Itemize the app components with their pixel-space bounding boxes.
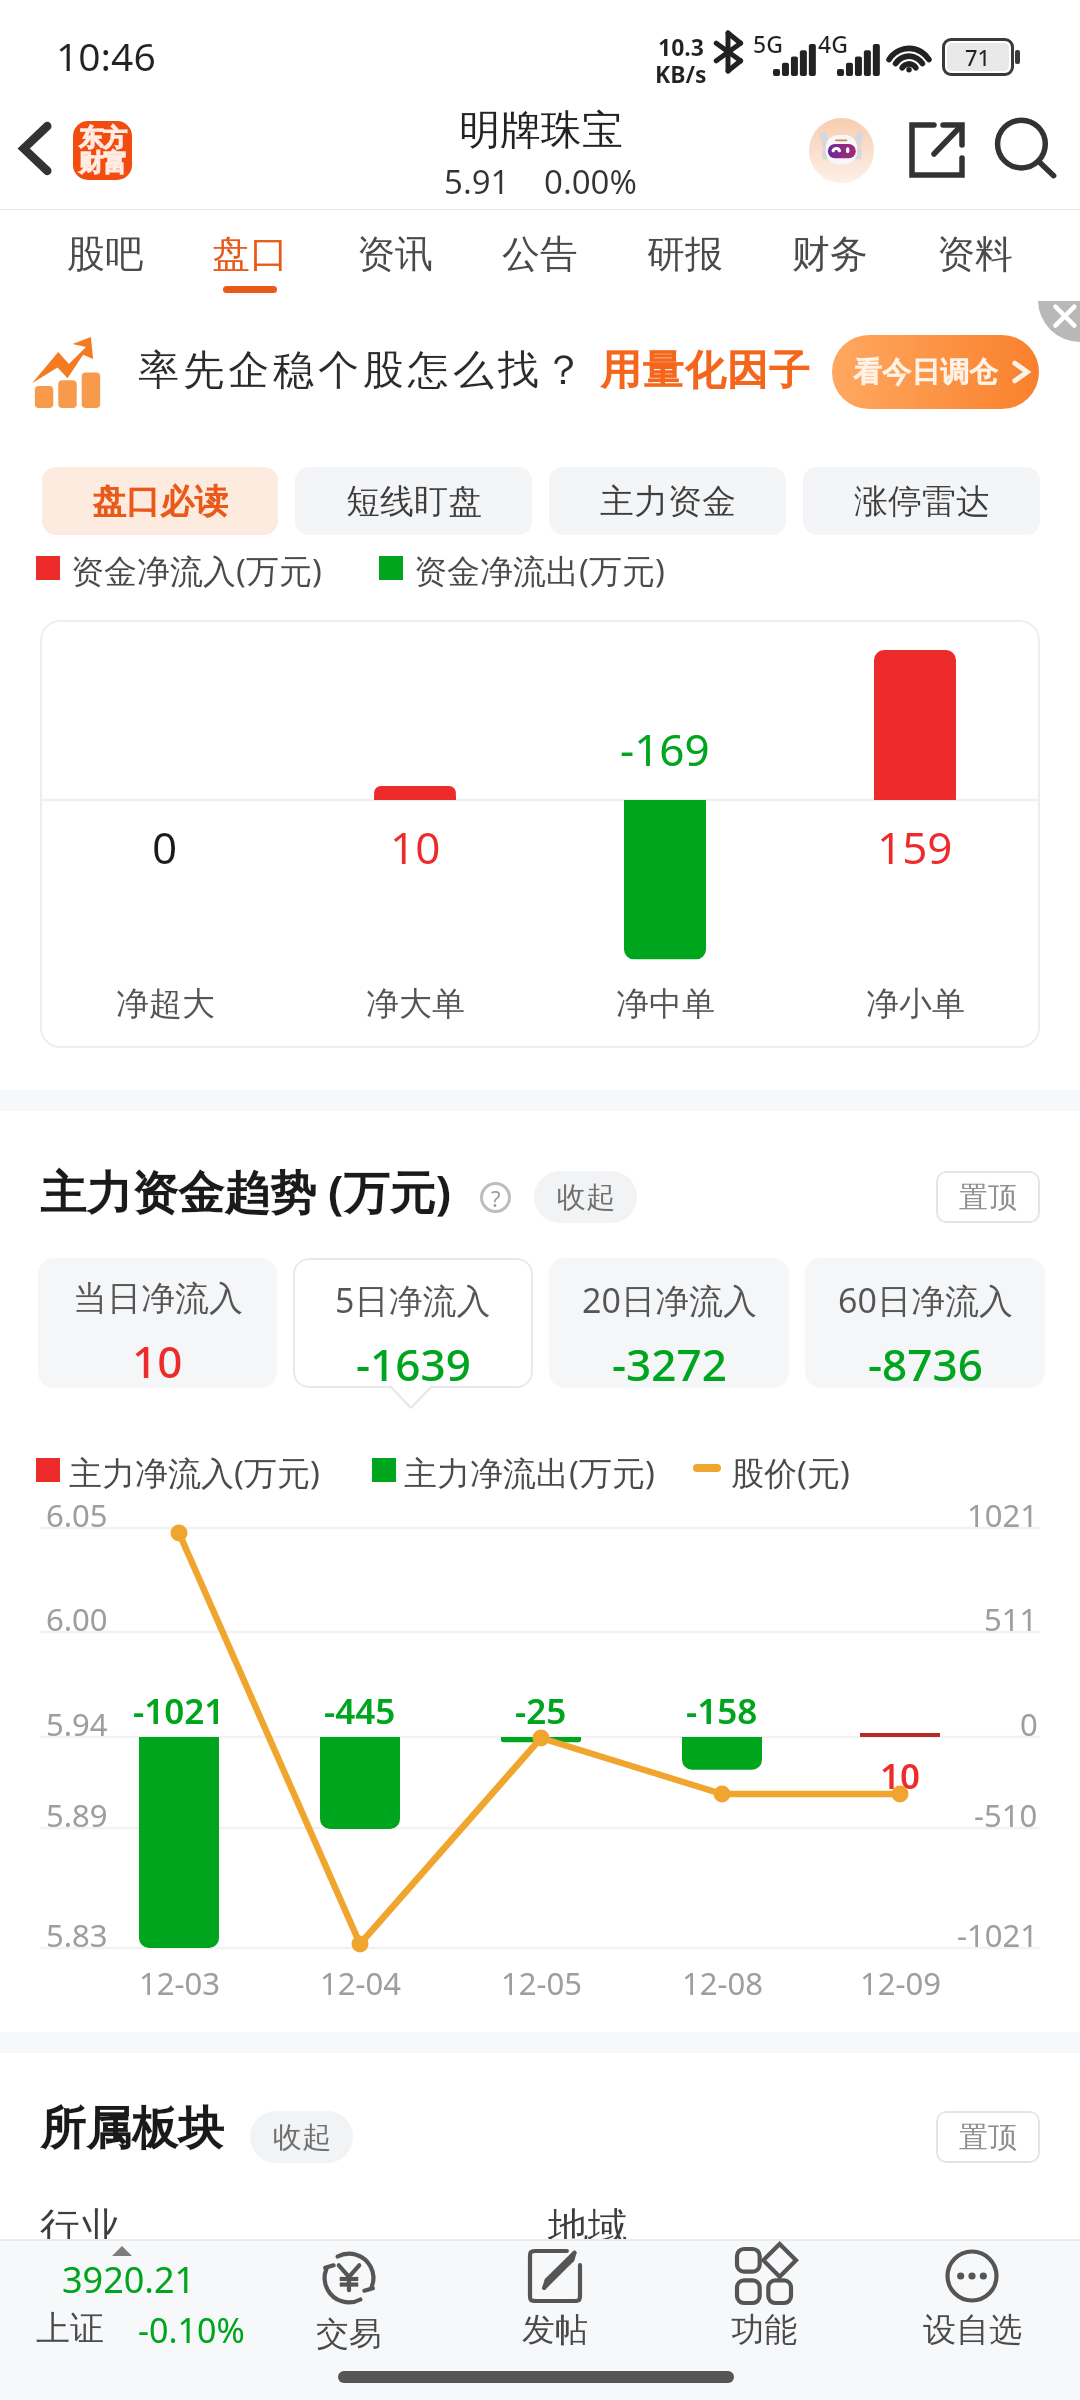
button[interactable]: 5日净流入 [293, 1258, 533, 1388]
staticText: 资料 [937, 230, 1013, 278]
button[interactable]: 当日净流入 [38, 1258, 277, 1388]
button[interactable]: 发帖 [465, 2241, 645, 2363]
staticText: 0 [1020, 1703, 1038, 1745]
button[interactable]: 短线盯盘 [295, 467, 532, 535]
staticText: 5日净流入 [335, 1277, 491, 1323]
staticText: 511 [984, 1598, 1038, 1640]
staticText: 5.83 [46, 1914, 108, 1956]
button[interactable]: 公告 [467, 210, 612, 300]
staticText: 资金净流出(万元) [414, 548, 665, 593]
staticText: 财务 [792, 230, 868, 278]
button[interactable]: 看今日调仓 [832, 335, 1039, 409]
staticText: -8736 [868, 1334, 983, 1388]
button[interactable]: AI assistant [809, 118, 874, 183]
button[interactable]: 股吧 [33, 210, 177, 300]
staticText: 地域 [548, 2202, 628, 2252]
button[interactable]: 资料 [902, 210, 1047, 300]
staticText: 盘口 [212, 230, 288, 278]
staticText: 10.3 [658, 31, 704, 62]
staticText: 净超大 [116, 983, 215, 1025]
staticText: 10 [880, 1752, 921, 1800]
staticText: 设自选 [923, 2309, 1022, 2351]
staticText: 159 [877, 817, 953, 877]
staticText: 短线盯盘 [346, 480, 482, 523]
staticText: 12-09 [860, 1962, 941, 2004]
button[interactable]: 收起 [534, 1171, 637, 1223]
staticText: 交易 [316, 2313, 382, 2355]
staticText: 5.89 [46, 1794, 108, 1836]
button[interactable]: 功能 [674, 2241, 854, 2363]
staticText: 主力净流入(万元) [69, 1450, 320, 1495]
staticText: 资金净流入(万元) [71, 548, 322, 593]
button[interactable]: 3920.21 [0, 2243, 270, 2359]
staticText: -169 [620, 719, 710, 779]
staticText: 功能 [731, 2309, 797, 2351]
staticText: 5G [753, 28, 783, 59]
staticText: -1639 [356, 1334, 471, 1388]
button[interactable]: Help [480, 1182, 511, 1213]
staticText: 主力资金 [600, 480, 736, 523]
button[interactable]: 盘口 [177, 210, 322, 300]
button[interactable]: Search [990, 112, 1064, 186]
staticText: 盘口必读 [92, 480, 228, 523]
button[interactable]: 置顶 [936, 2111, 1040, 2163]
staticText: 主力净流出(万元) [404, 1450, 655, 1495]
button[interactable]: 财务 [757, 210, 902, 300]
staticText: 净小单 [866, 983, 965, 1025]
button[interactable]: 研报 [612, 210, 757, 300]
staticText: 12-08 [682, 1962, 763, 2004]
staticText: 12-04 [320, 1962, 401, 2004]
staticText: 涨停雷达 [854, 480, 990, 523]
staticText: 用量化因子 [600, 345, 810, 397]
staticText: 20日净流入 [582, 1277, 757, 1323]
staticText: 看今日调仓 [853, 354, 998, 391]
button[interactable]: Promotion banner [0, 301, 1080, 430]
staticText: 10 [132, 1331, 183, 1388]
button[interactable]: 收起 [250, 2111, 353, 2163]
staticText: 发帖 [522, 2309, 588, 2351]
button[interactable]: 置顶 [936, 1171, 1040, 1223]
staticText: 71 [965, 42, 991, 72]
button[interactable]: 交易 [259, 2241, 439, 2363]
button[interactable]: 20日净流入 [549, 1258, 789, 1388]
staticText: 东方 [79, 123, 127, 153]
button[interactable]: 盘口必读 [42, 467, 278, 535]
staticText: -158 [686, 1687, 758, 1735]
staticText: 置顶 [959, 2119, 1017, 2156]
staticText: 4G [818, 28, 848, 59]
staticText: 10 [390, 817, 441, 877]
button[interactable]: 设自选 [882, 2241, 1062, 2363]
button[interactable]: 涨停雷达 [803, 467, 1040, 535]
button[interactable]: Back [0, 110, 76, 186]
button[interactable]: Share [900, 113, 974, 187]
staticText: -25 [515, 1687, 567, 1735]
staticText: 12-05 [501, 1962, 582, 2004]
staticText: 公告 [502, 230, 578, 278]
staticText: 5.91 [444, 159, 510, 204]
staticText: 当日净流入 [73, 1277, 243, 1320]
staticText: 6.05 [46, 1494, 108, 1536]
staticText: 0.00% [544, 159, 637, 204]
staticText: 率先企稳个股怎么找？ [136, 345, 586, 397]
staticText: 财富 [79, 148, 127, 178]
staticText: 净大单 [366, 983, 465, 1025]
staticText: 收起 [273, 2119, 331, 2156]
staticText: 股价(元) [731, 1450, 850, 1495]
button[interactable]: East Money [73, 121, 132, 180]
staticText: -1021 [133, 1687, 225, 1735]
staticText: 主力资金趋势 (万元) [40, 1160, 452, 1223]
button[interactable]: 资讯 [322, 210, 467, 300]
staticText: 置顶 [959, 1179, 1017, 1216]
staticText: 明牌珠宝 [459, 105, 623, 157]
button[interactable]: 60日净流入 [805, 1258, 1045, 1388]
staticText: 60日净流入 [838, 1277, 1013, 1323]
staticText: 12-03 [139, 1962, 220, 2004]
button[interactable]: 主力资金 [549, 467, 786, 535]
staticText: 研报 [647, 230, 723, 278]
staticText: 收起 [557, 1179, 615, 1216]
staticText: -510 [974, 1794, 1038, 1836]
button[interactable]: Close ad [1038, 301, 1080, 343]
staticText: 0 [152, 817, 178, 877]
staticText: 股吧 [67, 230, 143, 278]
staticText: 行业 [40, 2202, 120, 2252]
